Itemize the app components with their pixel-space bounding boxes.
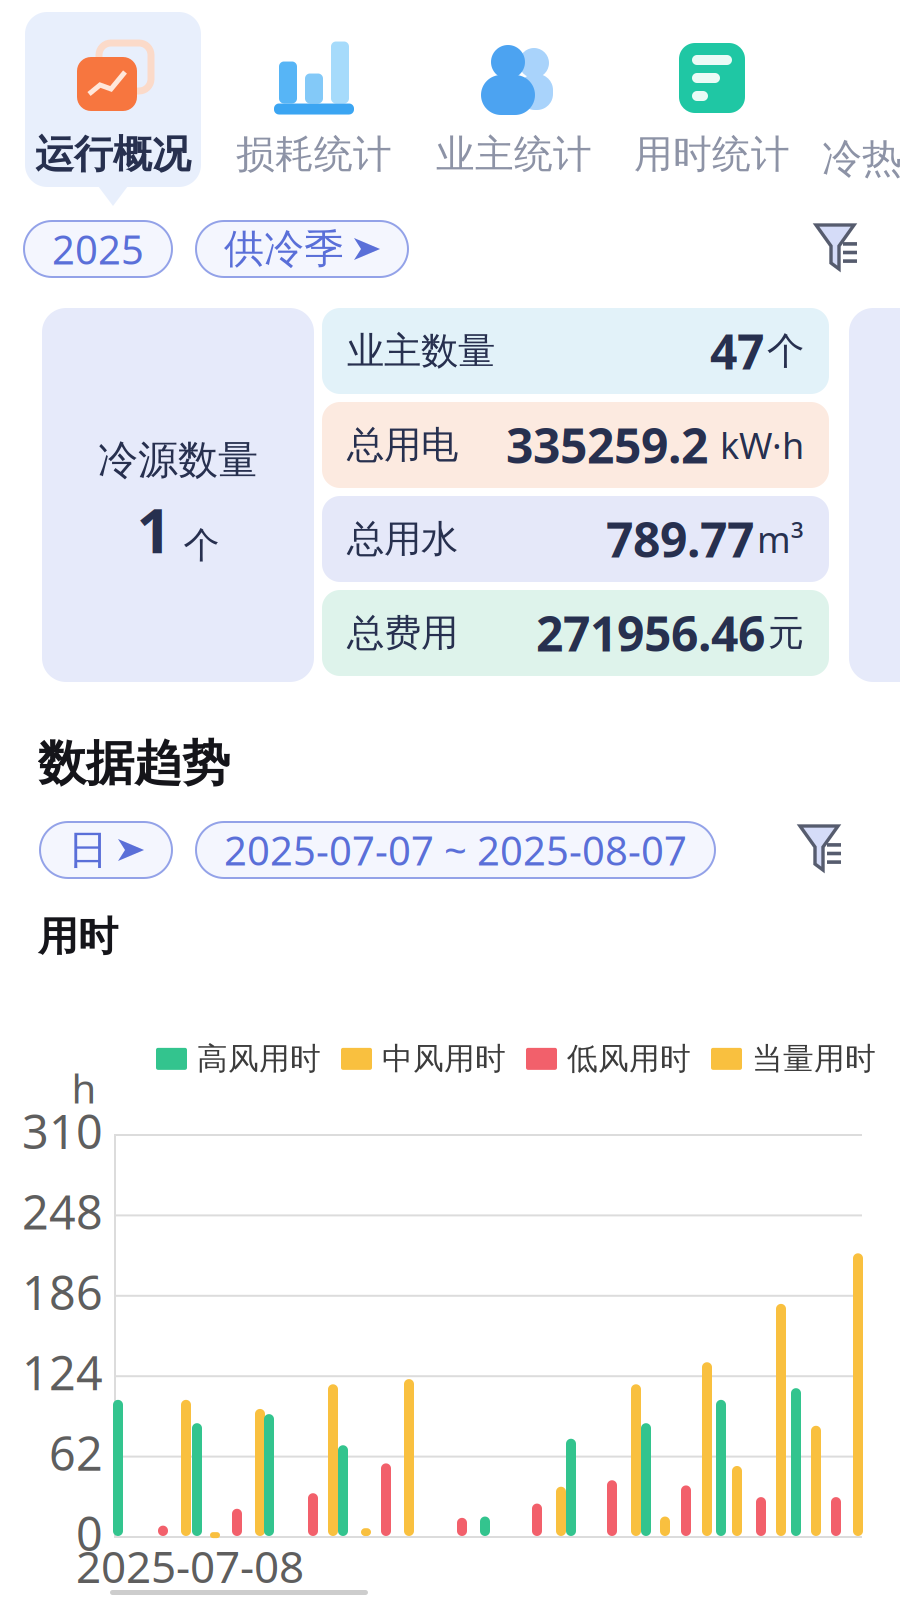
button[interactable]: 2025-07-07 ~ 2025-08-07 [196, 822, 715, 878]
staticText: 0 [76, 1502, 103, 1564]
staticText: 高风用时 [197, 1040, 321, 1078]
staticText: 用时统计 [634, 130, 790, 178]
staticText: 47 [710, 319, 764, 383]
staticText: 当量用时 [752, 1040, 876, 1078]
staticText: 业主数量 [347, 328, 495, 374]
button[interactable]: 损耗统计 [226, 12, 402, 187]
button[interactable]: 2025 [24, 221, 172, 277]
staticText: 总费用 [347, 610, 458, 656]
staticText: h [71, 1061, 96, 1114]
staticText: 元 [768, 611, 804, 655]
staticText: 中风用时 [382, 1040, 506, 1078]
staticText: 损耗统计 [236, 130, 392, 178]
button[interactable]: 冷热 [822, 134, 900, 183]
button[interactable]: 运行概况 [25, 12, 201, 187]
staticText: 2025-07-07 ~ 2025-08-07 [224, 823, 687, 876]
staticText: 271956.46 [536, 601, 765, 665]
staticText: 低风用时 [567, 1040, 691, 1078]
staticText: 运行概况 [35, 130, 191, 178]
staticText: 冷源数量 [98, 436, 258, 485]
staticText: 供冷季 [224, 224, 344, 273]
staticText: kW·h [711, 421, 804, 469]
button[interactable]: 日 [40, 822, 172, 878]
staticText: 789.77 [606, 507, 754, 571]
staticText: m³ [757, 515, 804, 563]
button[interactable]: 供冷季 [196, 221, 408, 277]
button[interactable]: 用时统计 [624, 12, 800, 187]
staticText: 186 [22, 1261, 103, 1323]
staticText: 248 [22, 1180, 103, 1242]
staticText: 个 [767, 328, 804, 374]
staticText: 335259.2 [506, 413, 708, 477]
staticText: 日 [68, 825, 108, 874]
staticText: 2025-07-08 [76, 1537, 304, 1595]
button[interactable]: 筛选 [798, 823, 860, 877]
staticText: 124 [22, 1341, 103, 1403]
staticText: 310 [22, 1100, 103, 1162]
button[interactable]: 筛选 [814, 222, 876, 276]
staticText: 个 [183, 523, 219, 567]
staticText: 2025 [52, 222, 144, 275]
staticText: 数据趋势 [38, 734, 230, 793]
staticText: 62 [49, 1422, 103, 1484]
button[interactable]: 业主统计 [426, 12, 602, 187]
staticText: 冷热 [822, 134, 900, 183]
staticText: 总用水 [347, 516, 458, 562]
staticText: 用时 [38, 912, 118, 961]
staticText: 总用电 [347, 422, 458, 468]
staticText: 业主统计 [436, 130, 592, 178]
staticText: 1 [136, 489, 171, 570]
